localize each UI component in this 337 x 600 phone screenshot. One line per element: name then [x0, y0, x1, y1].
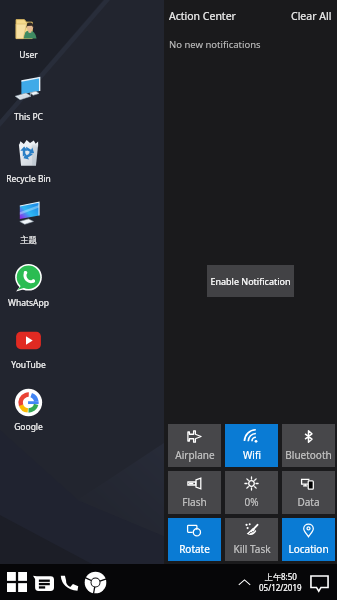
button[interactable]: Bluetooth — [282, 424, 335, 467]
button[interactable]: Airplane — [168, 424, 221, 467]
button[interactable]: Phone — [57, 564, 82, 600]
button[interactable]: Messages — [31, 564, 56, 600]
staticText: Bluetooth — [285, 448, 332, 462]
button[interactable]: 0% — [225, 471, 278, 514]
staticText: YouTube — [11, 359, 46, 371]
button[interactable]: Start — [4, 564, 29, 600]
button[interactable]: Enable Notification — [207, 265, 294, 297]
staticText: 上午8:50 — [265, 571, 297, 582]
button[interactable]: This PC — [2, 77, 54, 133]
button[interactable]: Chrome — [83, 564, 108, 600]
staticText: 05/12/2019 — [259, 582, 302, 593]
button[interactable]: Show hidden icons — [232, 564, 257, 600]
button[interactable]: Recycle Bin — [2, 139, 54, 195]
staticText: Kill Task — [233, 542, 271, 556]
staticText: Rotate — [179, 542, 210, 556]
button[interactable]: Google — [2, 387, 54, 443]
staticText: Data — [297, 495, 320, 509]
staticText: Enable Notification — [210, 275, 291, 287]
button[interactable]: User — [2, 15, 54, 71]
staticText: No new notifications — [169, 38, 261, 51]
staticText: Airplane — [175, 448, 215, 462]
staticText: Wifi — [243, 448, 261, 462]
button[interactable]: YouTube — [2, 325, 54, 381]
staticText: User — [19, 49, 38, 61]
button[interactable]: Rotate — [168, 518, 221, 561]
button[interactable]: Location — [282, 518, 335, 561]
button[interactable]: Action Center — [169, 9, 236, 23]
button[interactable]: 上午8:50 — [252, 564, 308, 600]
staticText: This PC — [14, 111, 43, 123]
staticText: Location — [288, 542, 329, 556]
staticText: 0% — [244, 495, 259, 509]
button[interactable]: Clear All — [291, 9, 332, 23]
staticText: Recycle Bin — [6, 173, 51, 185]
staticText: 主题 — [20, 235, 37, 246]
staticText: WhatsApp — [8, 297, 49, 309]
button[interactable]: Kill Task — [225, 518, 278, 561]
button[interactable]: Wifi — [225, 424, 278, 467]
button[interactable]: Action Center — [307, 564, 332, 600]
button[interactable]: Flash — [168, 471, 221, 514]
button[interactable]: WhatsApp — [2, 263, 54, 319]
staticText: Google — [14, 421, 43, 433]
button[interactable]: 主题 — [2, 201, 54, 257]
staticText: Flash — [182, 495, 207, 509]
button[interactable]: Data — [282, 471, 335, 514]
